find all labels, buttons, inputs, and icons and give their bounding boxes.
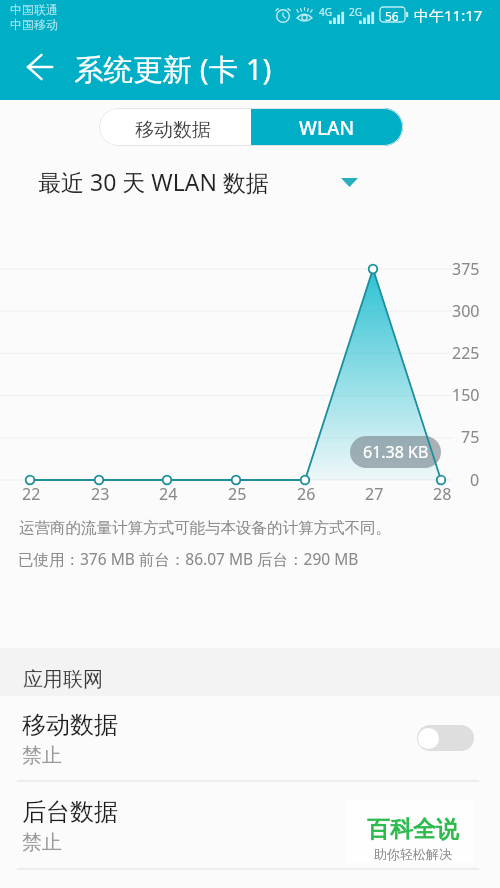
staticText: 助你轻松解决 (374, 846, 452, 862)
staticText: 225 (452, 342, 480, 364)
staticText: 4G (319, 5, 332, 19)
staticText: WLAN (299, 115, 355, 141)
staticText: 23 (91, 483, 110, 505)
staticText: 禁止 (22, 743, 62, 768)
staticText: 禁止 (22, 830, 62, 855)
staticText: 2G (349, 5, 362, 19)
staticText: 22 (22, 483, 41, 505)
staticText: 150 (452, 384, 480, 406)
staticText: 百科全说 (367, 815, 459, 844)
staticText: 0 (470, 469, 480, 491)
staticText: 应用联网 (23, 667, 103, 692)
staticText: 75 (461, 426, 480, 448)
staticText: 已使用：376 MB 前台：86.07 MB 后台：290 MB (18, 548, 359, 569)
button[interactable]: WLAN (251, 108, 403, 146)
staticText: 后台数据 (22, 797, 118, 827)
staticText: 运营商的流量计算方式可能与本设备的计算方式不同。 (19, 518, 391, 538)
staticText: 56 (385, 8, 399, 24)
staticText: 中午11:17 (414, 5, 483, 25)
staticText: 25 (228, 483, 247, 505)
staticText: 系统更新 (卡 1) (74, 48, 272, 88)
button[interactable]: Back (16, 43, 64, 91)
staticText: 中国移动 (10, 17, 58, 32)
staticText: 中国联通 (10, 2, 58, 17)
staticText: 最近 30 天 WLAN 数据 (38, 166, 269, 197)
staticText: 移动数据 (135, 118, 211, 142)
button[interactable]: 移动数据 (0, 696, 500, 781)
button[interactable]: 移动数据 (99, 108, 251, 146)
staticText: 375 (452, 258, 480, 280)
staticText: 27 (365, 483, 384, 505)
button[interactable]: Expand (332, 166, 366, 198)
staticText: 移动数据 (22, 710, 118, 740)
staticText: 28 (433, 483, 452, 505)
staticText: 61.38 KB (363, 441, 429, 463)
staticText: 24 (159, 483, 178, 505)
button[interactable]: 后台数据 (0, 782, 500, 863)
staticText: 300 (452, 300, 480, 322)
staticText: 26 (297, 483, 316, 505)
